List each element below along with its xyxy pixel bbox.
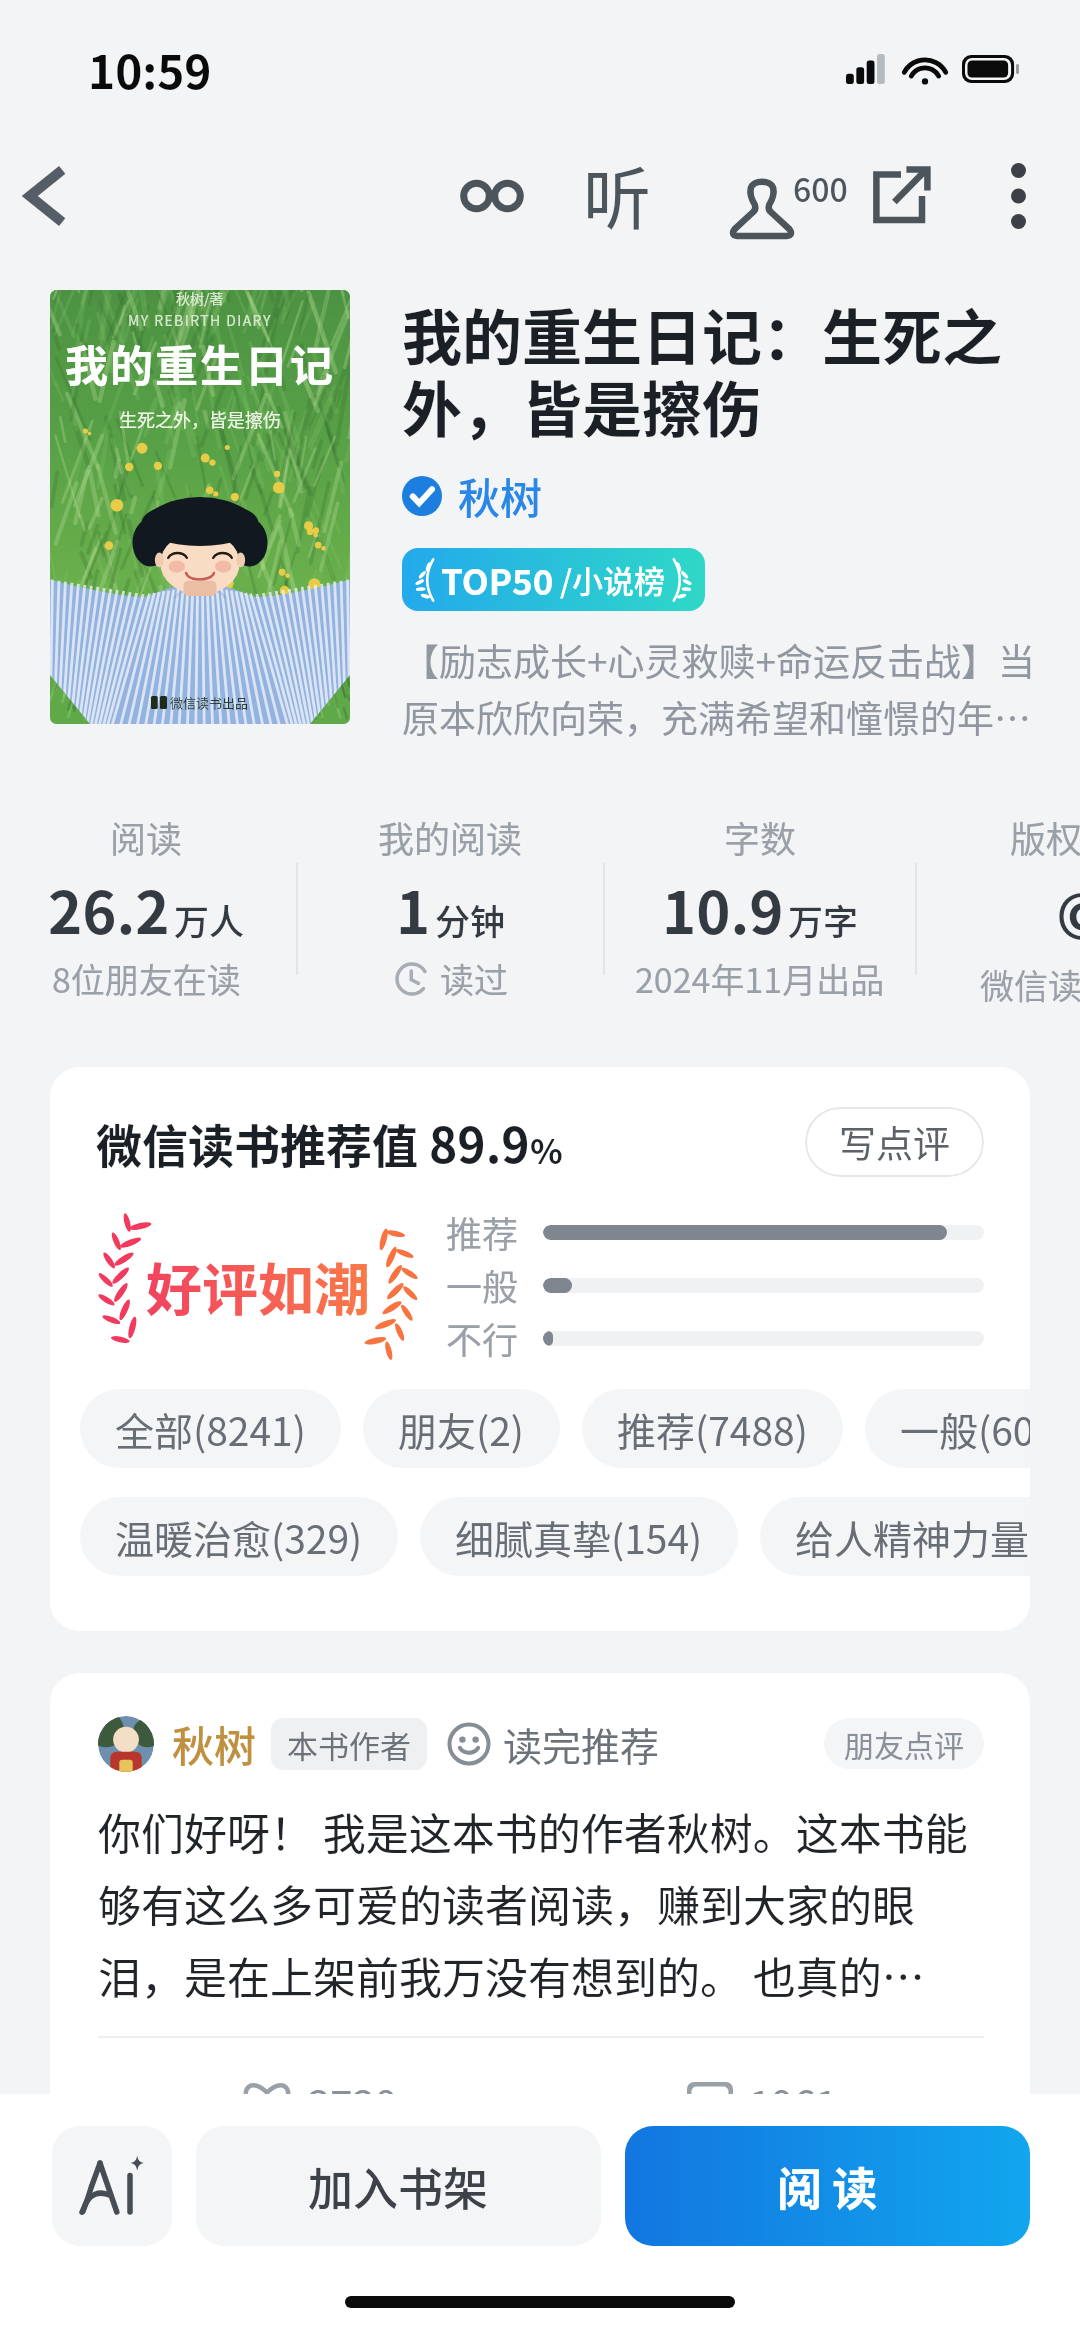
staticText: 生死之外，皆是擦伤 [119,406,281,432]
staticText: 3738 [308,2074,397,2132]
staticText: 微信读书出品 [980,960,1080,1009]
button[interactable]: 秋树/著 [50,290,350,724]
staticText: 阅读 [110,811,183,863]
button[interactable]: 听 [548,136,676,256]
button[interactable]: 秋树 [50,1673,1030,2153]
button[interactable]: Unlimited [420,136,548,256]
button[interactable]: Back [0,152,88,240]
staticText: 阅 读 [777,2154,878,2219]
staticText: 朋友(2) [398,1401,525,1457]
staticText: 一般 [446,1259,519,1311]
staticText: © [1056,867,1080,957]
staticText: 10.9 [662,867,784,951]
staticText: TOP50 [441,554,554,605]
staticText: 1961 [749,2074,838,2132]
button[interactable]: 我的阅读 [298,811,603,1011]
staticText: 秋树 [458,465,543,526]
staticText: 给人精神力量(112) [795,1509,1030,1565]
button[interactable]: 秋树 [402,463,543,528]
staticText: 字数 [724,811,797,863]
staticText: 万字 [788,894,859,945]
button[interactable]: AI assistant [52,2126,172,2246]
button[interactable]: Readers 600 [676,136,834,256]
staticText: 分钟 [435,894,506,945]
staticText: 听 [583,145,652,243]
button[interactable]: Share [834,136,962,256]
staticText: 推荐(7488) [617,1401,808,1457]
staticText: 8位朋友在读 [52,954,241,1003]
button[interactable]: 字数 [605,811,915,1011]
button[interactable]: 推荐(7488) [582,1389,843,1468]
staticText: 写点评 [839,1115,950,1169]
staticText: 10:59 [88,36,212,103]
staticText: 读过 [440,954,508,1003]
button[interactable]: 全部(8241) [80,1389,341,1468]
staticText: 加入书架 [308,2154,489,2219]
staticText: 我的重生日记：生死之外，皆是擦伤 [402,290,1058,449]
button[interactable]: 温暖治愈(329) [80,1497,398,1576]
button[interactable]: 阅读 [0,811,296,1011]
staticText: 26.2 [48,867,170,951]
button[interactable]: 给人精神力量(112) [760,1497,1030,1576]
staticText: 【励志成长+心灵救赎+命运反击战】当原本欣欣向荣，充满希望和憧憬的年… [402,633,1058,744]
staticText: 2024年11月出品 [635,954,885,1003]
staticText: 我的重生日记 [65,332,335,394]
button[interactable]: 细腻真挚(154) [420,1497,738,1576]
staticText: 全部(8241) [115,1401,306,1457]
staticText: 我的阅读 [378,811,523,863]
staticText: 本书作者 [287,1722,411,1767]
staticText: 一般(604) [900,1401,1030,1457]
staticText: 细腻真挚(154) [455,1509,703,1565]
staticText: 600 [793,165,848,211]
staticText: 89.9 [429,1107,530,1177]
staticText: 推荐 [446,1206,519,1258]
button[interactable]: 版权信息 [917,811,1080,1011]
button[interactable]: Comments 1961 [541,2068,984,2138]
button[interactable]: 写点评 [805,1107,984,1177]
button[interactable]: 朋友点评 [824,1718,984,1769]
button[interactable]: 一般(604) [865,1389,1030,1468]
staticText: 万人 [174,894,245,945]
staticText: 1 [396,867,431,951]
staticText: 秋树 [172,1713,257,1774]
staticText: 不行 [446,1312,519,1364]
button[interactable] [98,1716,154,1772]
staticText: % [530,1125,563,1174]
staticText: 你们好呀！ 我是这本书的作者秋树。这本书能够有这么多可爱的读者阅读，赚到大家的眼… [98,1800,984,2006]
staticText: MY REBIRTH DIARY [128,310,272,330]
staticText: 版权信息 [1010,811,1080,863]
button[interactable]: 朋友(2) [363,1389,560,1468]
button[interactable]: More options [962,136,1074,256]
staticText: /小说榜 [560,557,666,602]
staticText: 温暖治愈(329) [115,1509,363,1565]
staticText: 秋树/著 [176,290,224,308]
staticText: 朋友点评 [844,1722,964,1765]
button[interactable]: 加入书架 [196,2126,601,2246]
button[interactable]: Like 3738 [98,2068,541,2138]
button[interactable]: 阅 读 [625,2126,1030,2246]
staticText: 读完推荐 [503,1716,660,1772]
button[interactable]: TOP50 [402,548,705,611]
staticText: 微信读书出品 [170,693,249,712]
staticText: 好评如潮 [146,1245,370,1326]
staticText: 微信读书推荐值 [96,1110,429,1177]
